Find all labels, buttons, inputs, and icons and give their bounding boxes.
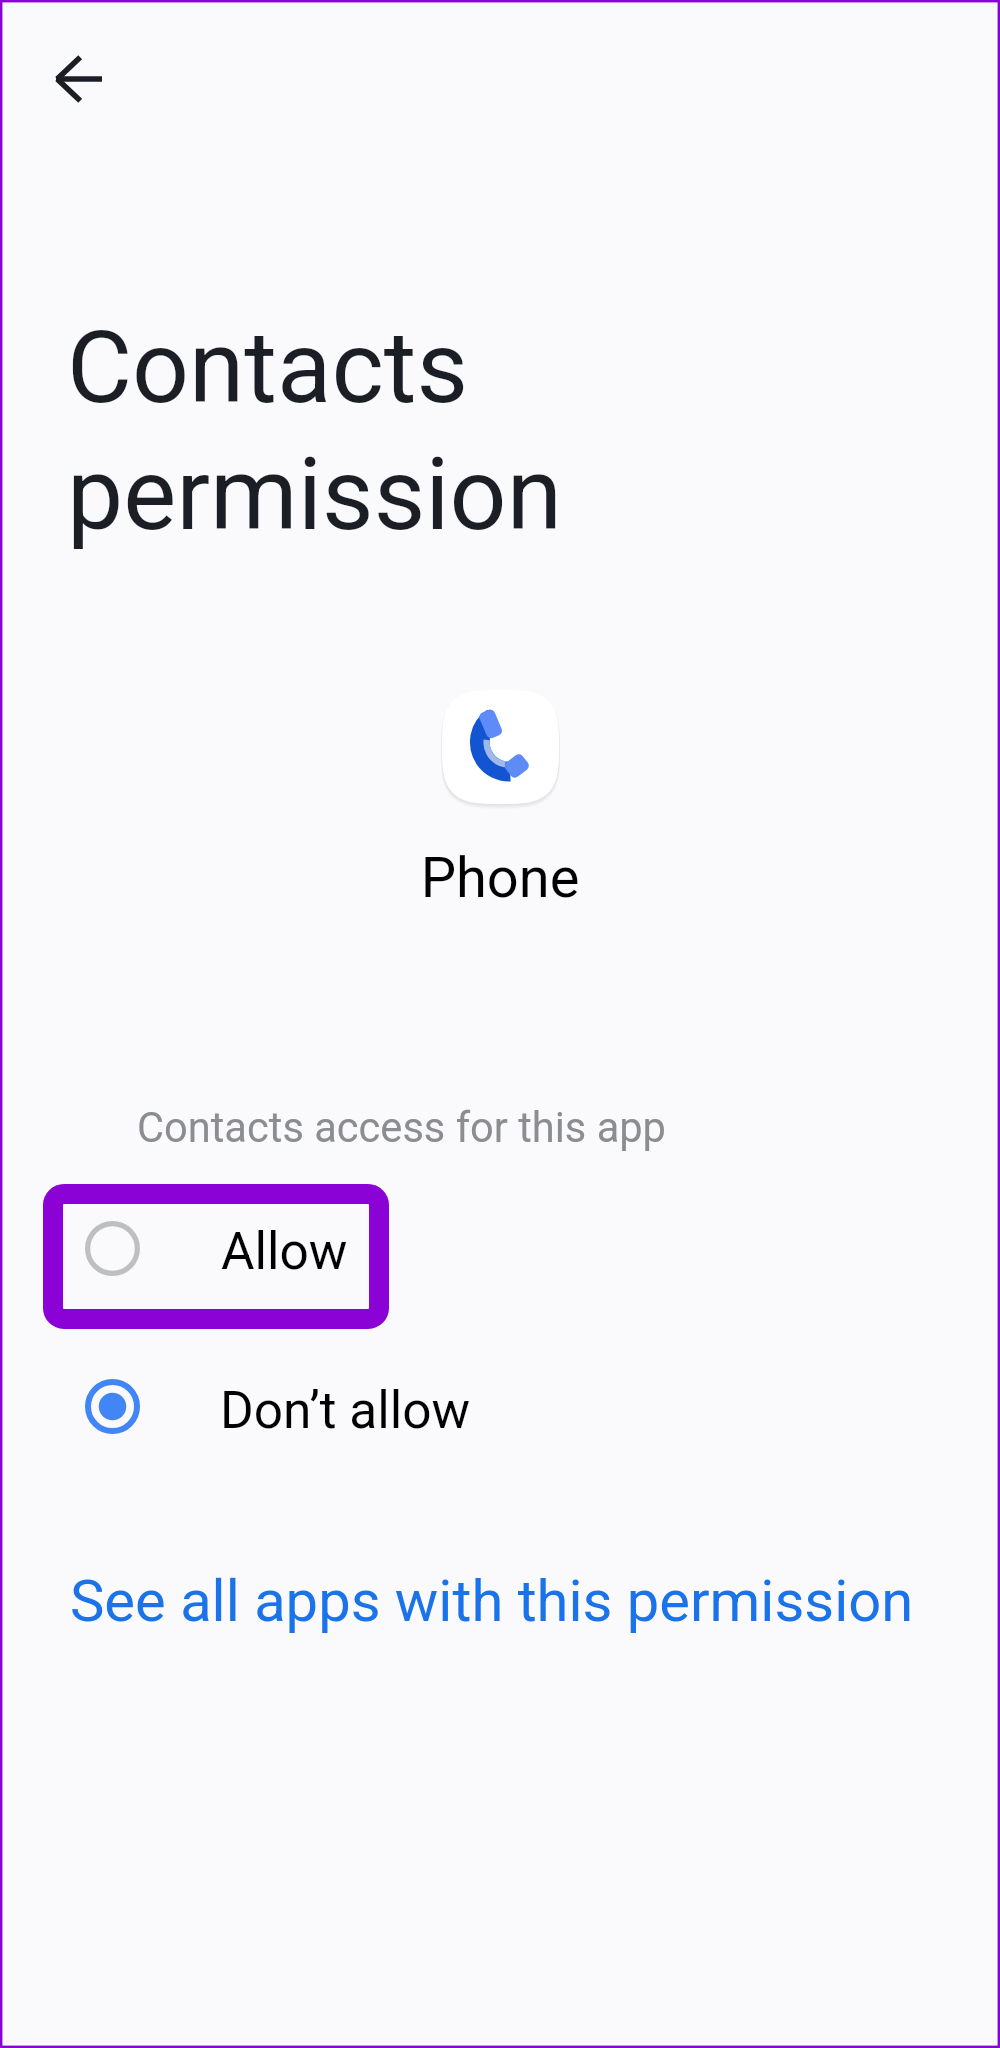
staticText: Contacts permission: [67, 309, 562, 553]
button[interactable]: See all apps with this permission: [70, 1567, 914, 1635]
staticText: Contacts access for this app: [137, 1103, 666, 1152]
staticText: Allow: [221, 1221, 348, 1281]
button[interactable]: Back: [36, 36, 122, 122]
staticText: Don’t allow: [220, 1380, 471, 1440]
staticText: Phone: [0, 845, 1000, 911]
button[interactable]: Don’t allow: [0, 1347, 1000, 1471]
staticText: See all apps with this permission: [70, 1567, 914, 1635]
button[interactable]: Allow: [0, 1188, 1000, 1312]
